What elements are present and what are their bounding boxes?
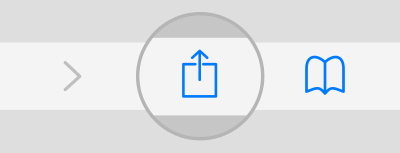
button[interactable]: Share <box>138 11 262 135</box>
button[interactable]: Bookmarks <box>277 42 373 110</box>
button[interactable]: Forward <box>24 42 120 110</box>
